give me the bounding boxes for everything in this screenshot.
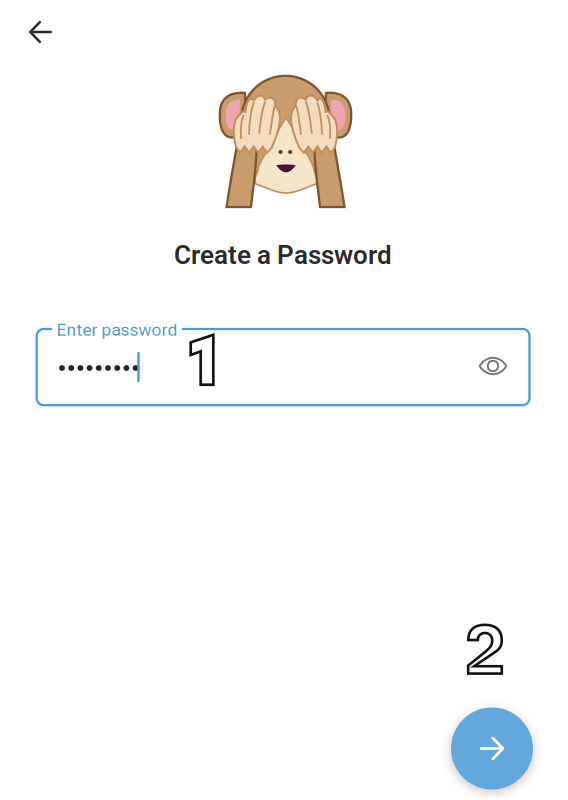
button[interactable]: Back bbox=[17, 9, 63, 55]
staticText: Enter password bbox=[56, 320, 177, 340]
button[interactable]: Show password bbox=[470, 343, 516, 389]
staticText: Create a Password bbox=[174, 240, 392, 270]
button[interactable]: Continue bbox=[451, 707, 533, 789]
